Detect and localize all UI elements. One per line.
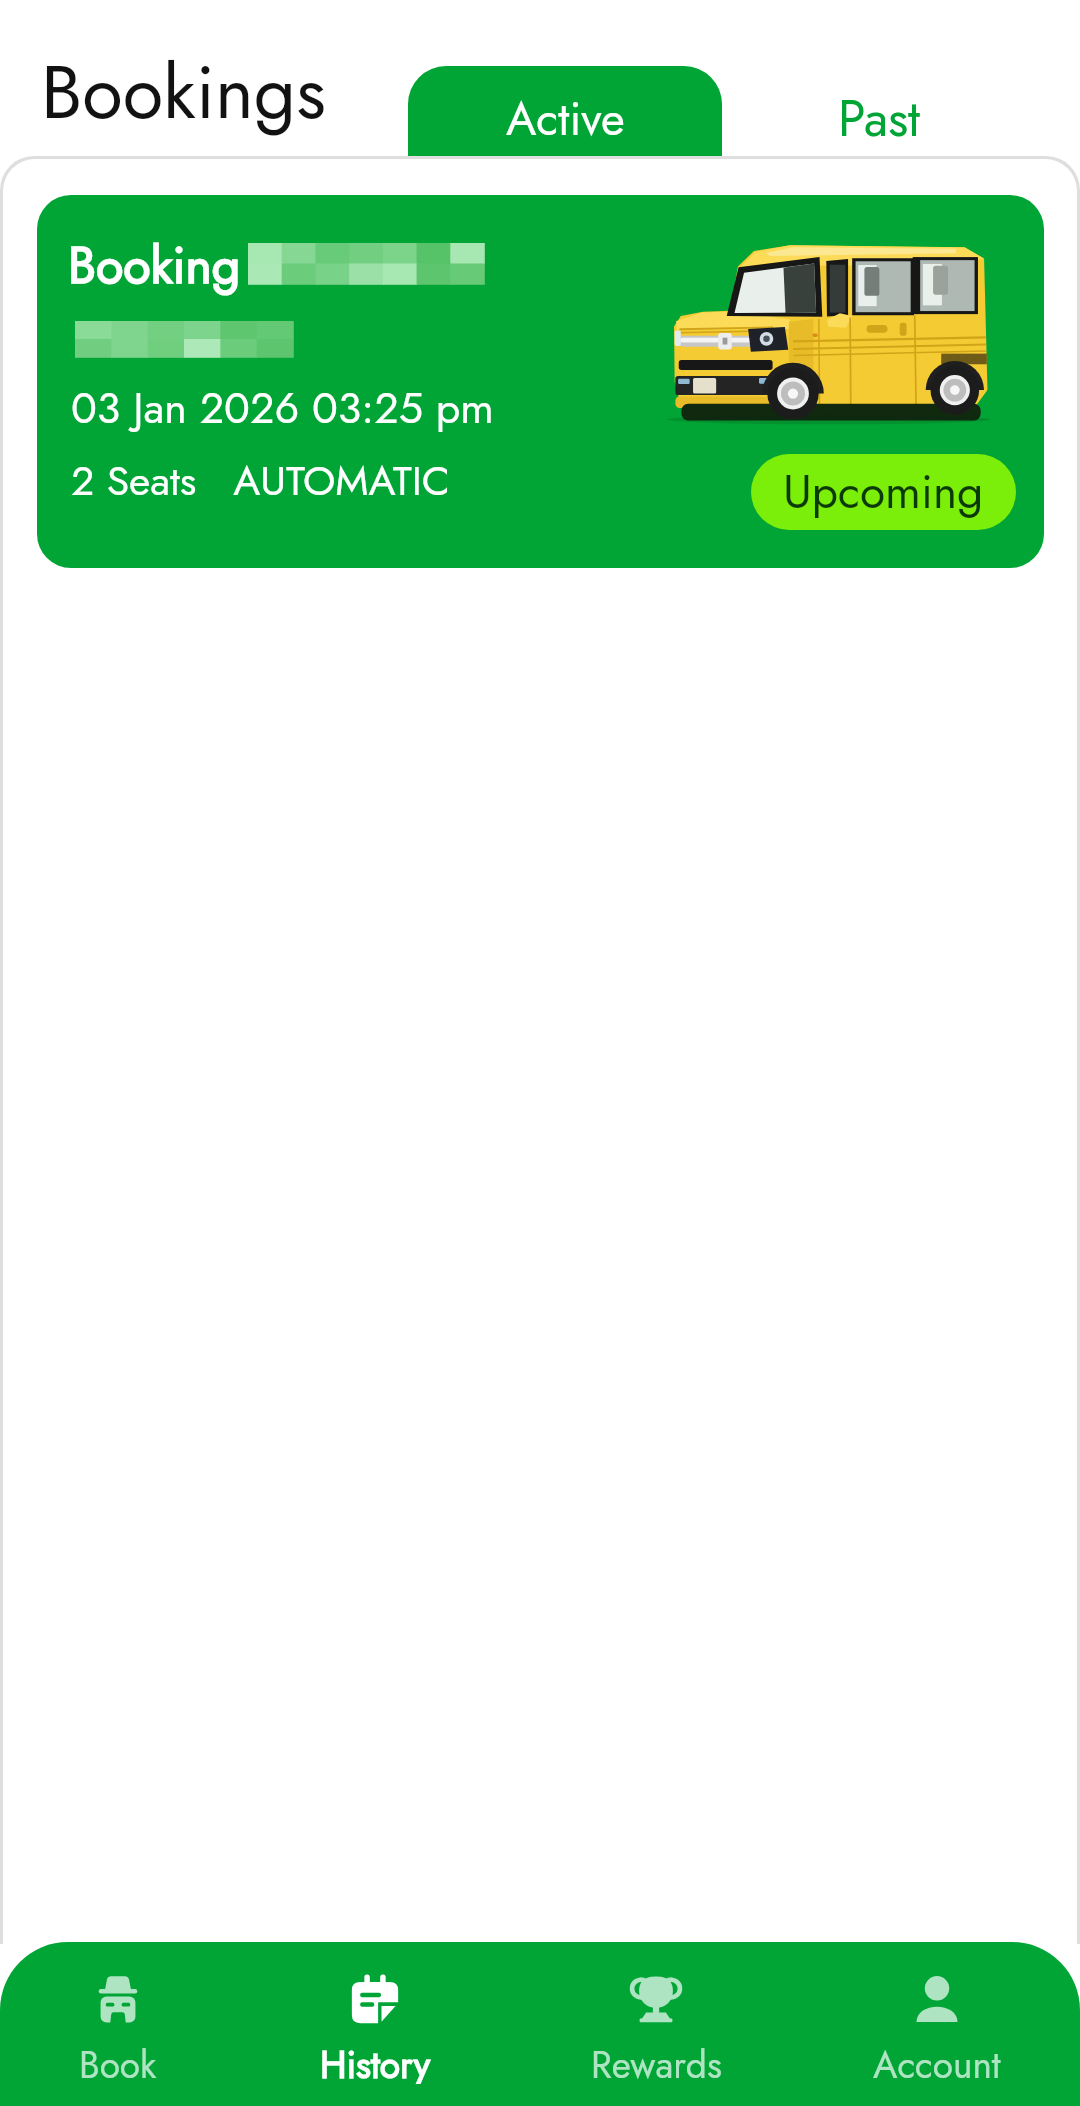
button[interactable]: Upcoming [751,454,1016,530]
button[interactable]: History [245,1974,505,2084]
staticText: Rewards [591,2038,722,2084]
staticText: Past [838,82,921,154]
staticText: Account [873,2038,1001,2084]
staticText: Book [79,2038,157,2084]
button[interactable]: Active [408,66,722,161]
staticText: Active [506,86,625,152]
staticText: Bookings [41,39,326,146]
button[interactable]: Book [0,1974,248,2084]
staticText: Booking [68,229,241,301]
button[interactable]: Rewards [526,1974,786,2084]
staticText: Upcoming [783,459,984,525]
staticText: 2 Seats AUTOMATIC [71,451,450,510]
staticText: History [320,2038,431,2084]
button[interactable]: Booking [37,195,1044,568]
staticText: 03 Jan 2026 03:25 pm [71,377,494,439]
button[interactable]: Account [807,1974,1067,2084]
button[interactable]: Past [784,62,974,154]
